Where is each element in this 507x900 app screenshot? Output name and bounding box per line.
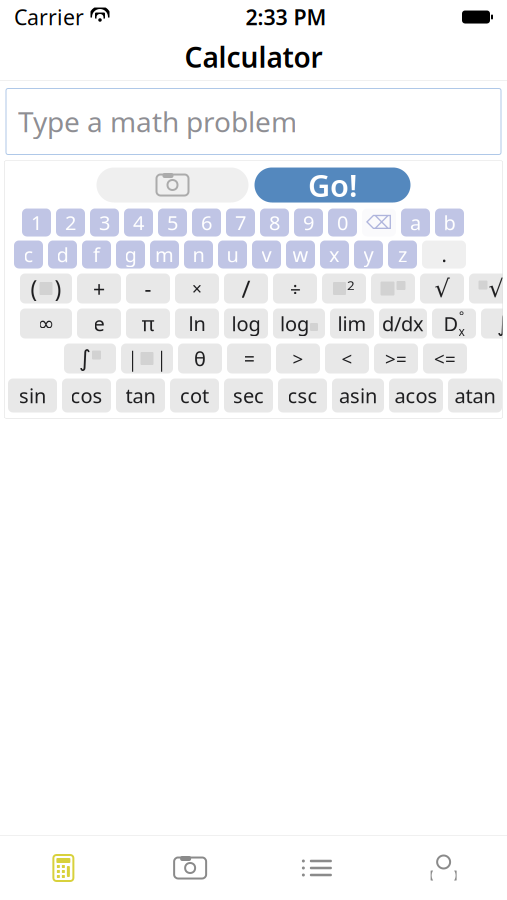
button[interactable]: c xyxy=(14,240,43,268)
staticText: × xyxy=(192,277,202,300)
button[interactable]: Calculator xyxy=(0,836,127,900)
button[interactable]: π xyxy=(126,308,170,338)
staticText: 3 xyxy=(99,209,110,236)
button[interactable]: Backspace xyxy=(362,208,396,236)
button[interactable]: History xyxy=(253,836,380,900)
button[interactable] xyxy=(371,273,415,303)
button[interactable]: x xyxy=(320,240,349,268)
staticText: 1 xyxy=(31,209,42,236)
button[interactable]: Type a math problem xyxy=(6,88,501,154)
staticText: > xyxy=(292,346,303,371)
button[interactable]: y xyxy=(354,240,383,268)
button[interactable]: 4 xyxy=(124,208,153,236)
button[interactable]: >= xyxy=(374,343,418,373)
button[interactable]: b xyxy=(435,208,464,236)
button[interactable]: √ xyxy=(420,273,464,303)
button[interactable]: 6 xyxy=(192,208,221,236)
button[interactable]: n xyxy=(184,240,213,268)
button[interactable]: cos xyxy=(62,378,111,412)
button[interactable]: Scan with camera xyxy=(96,167,248,202)
staticText: ∞ xyxy=(37,312,54,335)
button[interactable]: 3 xyxy=(90,208,119,236)
button[interactable]: × xyxy=(175,273,219,303)
button[interactable]: w xyxy=(286,240,315,268)
button[interactable]: ∫ xyxy=(64,343,116,373)
button[interactable]: tan xyxy=(116,378,165,412)
button[interactable]: > xyxy=(276,343,320,373)
button[interactable]: = xyxy=(227,343,271,373)
staticText: atan xyxy=(454,382,495,409)
button[interactable]: 7 xyxy=(226,208,255,236)
staticText: Type a math problem xyxy=(18,103,297,140)
button[interactable]: g xyxy=(116,240,145,268)
button[interactable]: Camera xyxy=(127,836,254,900)
button[interactable]: ( xyxy=(20,273,72,303)
staticText: cos xyxy=(70,382,102,409)
staticText: n xyxy=(192,241,204,268)
staticText: e xyxy=(93,310,104,337)
button[interactable]: 8 xyxy=(260,208,289,236)
button[interactable]: d xyxy=(48,240,77,268)
button[interactable]: 5 xyxy=(158,208,187,236)
button[interactable]: ∫ xyxy=(481,308,507,338)
button[interactable]: log xyxy=(224,308,268,338)
button[interactable]: D xyxy=(432,308,476,338)
button[interactable]: + xyxy=(77,273,121,303)
staticText: x xyxy=(458,323,464,339)
button[interactable]: θ xyxy=(178,343,222,373)
staticText: asin xyxy=(339,382,377,409)
button[interactable]: asin xyxy=(332,378,384,412)
button[interactable]: Account xyxy=(380,836,507,900)
staticText: ( xyxy=(30,273,37,303)
staticText: π xyxy=(141,310,154,337)
button[interactable]: z xyxy=(388,240,417,268)
button[interactable]: f xyxy=(82,240,111,268)
button[interactable]: cot xyxy=(170,378,219,412)
button[interactable]: Go! xyxy=(254,167,410,202)
staticText: - xyxy=(144,274,151,303)
button[interactable]: - xyxy=(126,273,170,303)
staticText: acos xyxy=(394,382,437,409)
button[interactable]: 9 xyxy=(294,208,323,236)
staticText: Carrier xyxy=(14,3,84,31)
staticText: ⌫ xyxy=(366,212,392,233)
button[interactable]: sin xyxy=(8,378,57,412)
button[interactable]: lim xyxy=(330,308,374,338)
button[interactable]: v xyxy=(252,240,281,268)
staticText: | xyxy=(126,344,138,373)
staticText: x xyxy=(329,241,340,268)
button[interactable]: 0 xyxy=(328,208,357,236)
button[interactable]: ÷ xyxy=(273,273,317,303)
staticText: | xyxy=(155,344,167,373)
button[interactable]: √ xyxy=(469,273,507,303)
button[interactable]: sec xyxy=(224,378,273,412)
staticText: . xyxy=(441,241,446,268)
staticText: sin xyxy=(19,382,46,409)
staticText: ∫ xyxy=(497,311,507,336)
button[interactable]: m xyxy=(150,240,179,268)
button[interactable]: a xyxy=(401,208,430,236)
button[interactable]: u xyxy=(218,240,247,268)
staticText: ° xyxy=(459,308,464,323)
staticText: d/dx xyxy=(382,310,424,337)
button[interactable]: <= xyxy=(423,343,467,373)
button[interactable]: 2 xyxy=(56,208,85,236)
button[interactable]: csc xyxy=(278,378,327,412)
button[interactable]: / xyxy=(224,273,268,303)
staticText: D xyxy=(443,310,458,337)
button[interactable]: | xyxy=(121,343,173,373)
button[interactable]: log xyxy=(273,308,325,338)
button[interactable]: acos xyxy=(389,378,443,412)
button[interactable]: d/dx xyxy=(379,308,427,338)
staticText: u xyxy=(226,241,238,268)
button[interactable]: e xyxy=(77,308,121,338)
staticText: d xyxy=(56,241,68,268)
button[interactable]: 1 xyxy=(22,208,51,236)
button[interactable]: atan xyxy=(448,378,502,412)
staticText: y xyxy=(363,241,373,268)
button[interactable]: ln xyxy=(175,308,219,338)
button[interactable]: ∞ xyxy=(20,308,72,338)
button[interactable]: . xyxy=(422,240,466,268)
button[interactable]: < xyxy=(325,343,369,373)
button[interactable]: 2 xyxy=(322,273,366,303)
